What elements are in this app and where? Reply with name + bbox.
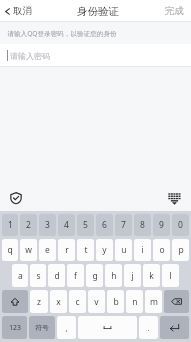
staticText: 9 [159,219,164,231]
button[interactable]: Hide keyboard [165,189,183,207]
button[interactable]: v [88,290,105,313]
staticText: l [169,270,172,282]
button[interactable]: 符号 [29,316,55,339]
staticText: q [7,244,13,256]
button[interactable]: 4 [58,214,75,236]
staticText: k [149,270,154,282]
button[interactable]: n [126,290,143,313]
button[interactable]: Shift [2,290,28,313]
staticText: o [159,244,165,256]
staticText: w [25,244,32,256]
staticText: r [65,244,69,256]
button[interactable]: t [77,239,94,261]
button[interactable]: r [58,239,75,261]
staticText: h [111,270,117,282]
button[interactable]: a [12,264,28,287]
button[interactable]: j [124,264,141,287]
staticText: j [131,270,134,282]
button[interactable]: d [48,264,65,287]
staticText: n [132,296,138,308]
staticText: 完成 [165,5,184,17]
button[interactable]: 请输入密码 [0,44,191,67]
button[interactable]: 9 [153,214,170,236]
button[interactable]: 0 [172,214,189,236]
button[interactable]: g [86,264,103,287]
button[interactable]: p [172,239,189,261]
button[interactable]: 完成 [158,0,191,22]
button[interactable]: Secure keyboard [7,189,24,206]
button[interactable]: 3 [39,214,56,236]
staticText: y [102,244,107,256]
staticText: 请输入密码 [10,51,50,61]
button[interactable]: y [96,239,113,261]
staticText: x [56,296,61,308]
button[interactable]: 2 [20,214,37,236]
button[interactable]: l [162,264,179,287]
staticText: m [150,296,158,308]
staticText: 123 [9,323,21,332]
staticText: u [121,244,127,256]
staticText: f [74,270,77,282]
staticText: , [65,323,68,333]
button[interactable]: . [139,316,158,339]
staticText: 请输入QQ登录密码，以验证您的身份 [7,29,117,38]
button[interactable]: i [134,239,151,261]
staticText: g [92,270,98,282]
staticText: 0 [178,219,183,231]
staticText: c [75,296,80,308]
staticText: 6 [102,219,107,231]
staticText: s [36,270,41,282]
button[interactable]: Enter [160,316,189,339]
button[interactable]: f [67,264,84,287]
staticText: 2 [26,219,31,231]
button[interactable]: m [145,290,162,313]
button[interactable]: s [30,264,46,287]
button[interactable]: 5 [77,214,94,236]
staticText: t [84,244,88,256]
button[interactable]: b [107,290,124,313]
staticText: d [54,270,60,282]
button[interactable]: k [143,264,160,287]
button[interactable]: x [50,290,67,313]
button[interactable]: h [105,264,122,287]
button[interactable]: o [153,239,170,261]
button[interactable]: e [39,239,56,261]
button[interactable]: Backspace [164,290,189,313]
staticText: 3 [45,219,50,231]
button[interactable]: c [69,290,86,313]
staticText: 身份验证 [77,5,119,18]
button[interactable]: 6 [96,214,113,236]
staticText: 8 [140,219,145,231]
button[interactable]: 123 [2,316,27,339]
button[interactable]: 7 [115,214,132,236]
staticText: 符号 [35,323,49,332]
button[interactable]: 8 [134,214,151,236]
button[interactable]: u [115,239,132,261]
staticText: i [141,244,144,256]
staticText: 5 [83,219,88,231]
staticText: 7 [121,219,126,231]
button[interactable]: q [2,239,18,261]
staticText: z [37,296,41,308]
staticText: e [45,244,50,256]
staticText: p [178,244,184,256]
staticText: . [147,323,150,333]
button[interactable]: 1 [2,214,18,236]
button[interactable]: Space [78,316,137,339]
staticText: 1 [8,219,13,231]
staticText: a [18,270,23,282]
staticText: 4 [64,219,69,231]
staticText: b [113,296,119,308]
button[interactable]: , [57,316,76,339]
button[interactable]: w [20,239,37,261]
staticText: v [94,296,99,308]
button[interactable]: 取消 [0,0,38,22]
button[interactable]: z [30,290,48,313]
staticText: 取消 [13,5,32,17]
